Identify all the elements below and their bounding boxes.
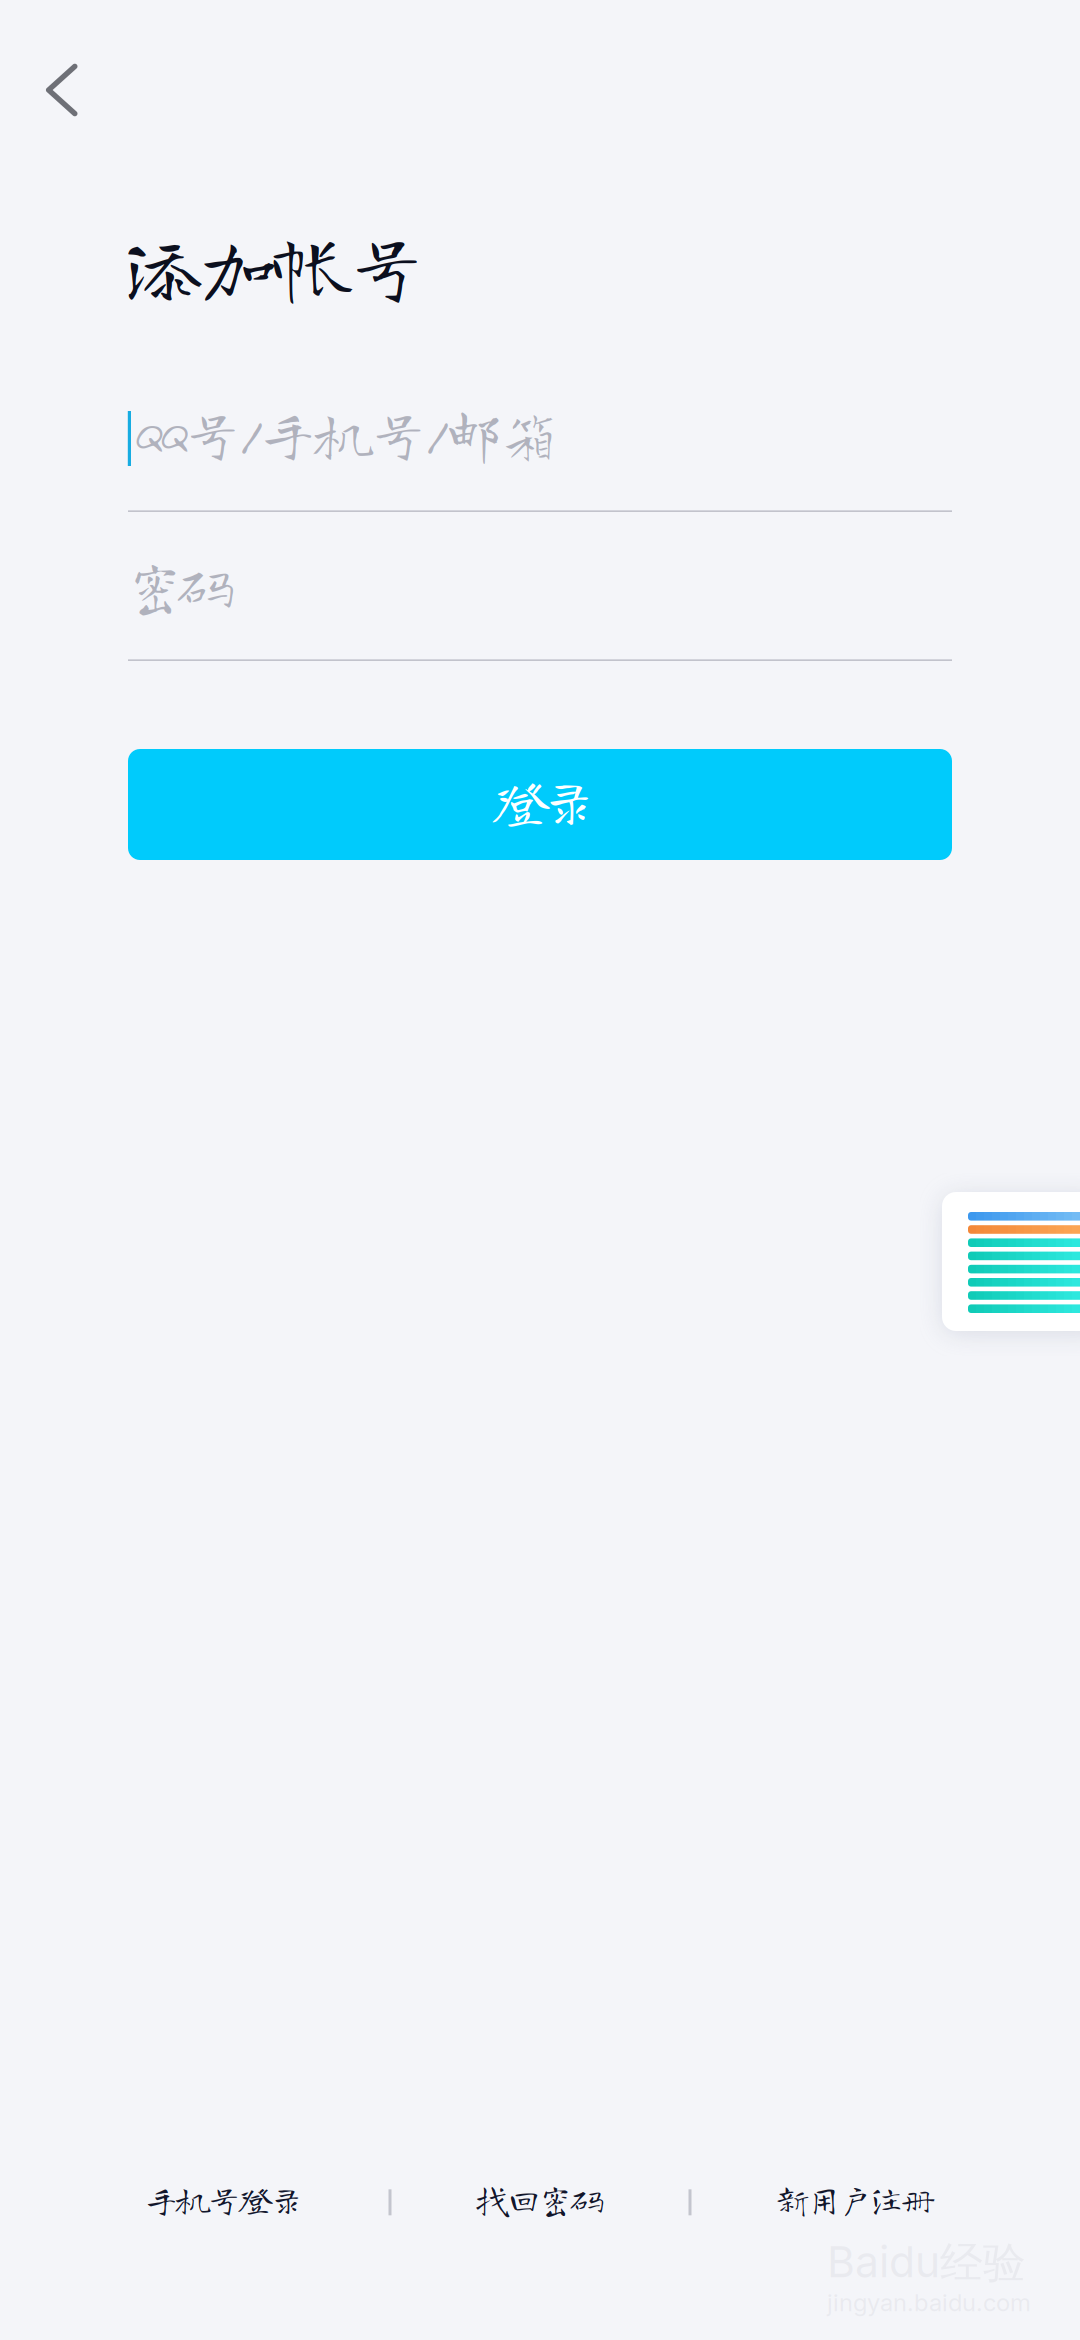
staticText: 密码 xyxy=(126,556,235,615)
staticText: Baidu经验 xyxy=(827,2236,1026,2290)
button[interactable]: Floating assistant xyxy=(942,1192,1080,1331)
staticText: QQ号/手机号/邮箱 xyxy=(133,404,559,463)
button[interactable]: 新用户注册 xyxy=(775,2182,936,2217)
button[interactable]: 登 录 xyxy=(128,749,952,860)
staticText: jingyan.baidu.com xyxy=(827,2288,1031,2317)
button[interactable]: 找回密码 xyxy=(475,2182,605,2217)
staticText: 登 录 xyxy=(492,772,597,829)
button[interactable]: Back xyxy=(0,0,132,160)
staticText: 手机号登录 xyxy=(144,2182,305,2217)
staticText: 找回密码 xyxy=(475,2182,605,2217)
button[interactable]: 密码 xyxy=(128,532,952,661)
staticText: 新用户注册 xyxy=(775,2182,936,2217)
button[interactable]: QQ号/手机号/邮箱 xyxy=(128,380,952,512)
button[interactable]: 手机号登录 xyxy=(144,2182,305,2217)
staticText: 添加帐号 xyxy=(125,226,427,306)
